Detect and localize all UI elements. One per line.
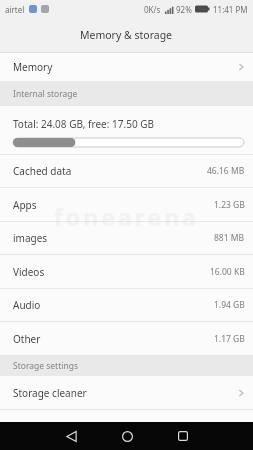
staticText: 1.17 GB: [214, 333, 245, 345]
button[interactable]: Other: [0, 322, 253, 356]
staticText: 0K/s: [144, 4, 161, 15]
staticText: 881 MB: [214, 232, 245, 244]
staticText: Total: 24.08 GB, free: 17.50 GB: [13, 117, 154, 131]
staticText: Internal storage: [13, 88, 78, 100]
button[interactable]: Audio: [0, 289, 253, 322]
button[interactable]: Memory: [0, 53, 253, 81]
staticText: 92%: [176, 4, 192, 15]
button[interactable]: [163, 422, 203, 450]
staticText: Other: [13, 332, 41, 346]
button[interactable]: Storage cleaner: [0, 376, 253, 410]
button[interactable]: [51, 422, 91, 450]
button[interactable]: images: [0, 222, 253, 255]
staticText: 1.23 GB: [214, 199, 245, 211]
staticText: Videos: [13, 265, 45, 279]
button[interactable]: Cached data: [0, 155, 253, 188]
button[interactable]: [107, 422, 147, 450]
staticText: Storage cleaner: [13, 386, 87, 400]
staticText: 16.00 KB: [210, 266, 245, 278]
staticText: images: [13, 231, 48, 245]
staticText: Storage settings: [13, 360, 78, 372]
staticText: 46.16 MB: [207, 165, 245, 177]
staticText: Audio: [13, 298, 41, 312]
staticText: 1.94 GB: [214, 299, 245, 311]
staticText: Apps: [13, 198, 37, 212]
staticText: Memory & storage: [80, 28, 173, 42]
staticText: airtel: [5, 4, 25, 15]
button[interactable]: Videos: [0, 255, 253, 289]
staticText: Memory: [13, 60, 53, 74]
staticText: 11:41 PM: [213, 4, 248, 15]
staticText: fonearena: [54, 201, 200, 232]
button[interactable]: Apps: [0, 188, 253, 222]
staticText: Cached data: [13, 164, 72, 178]
